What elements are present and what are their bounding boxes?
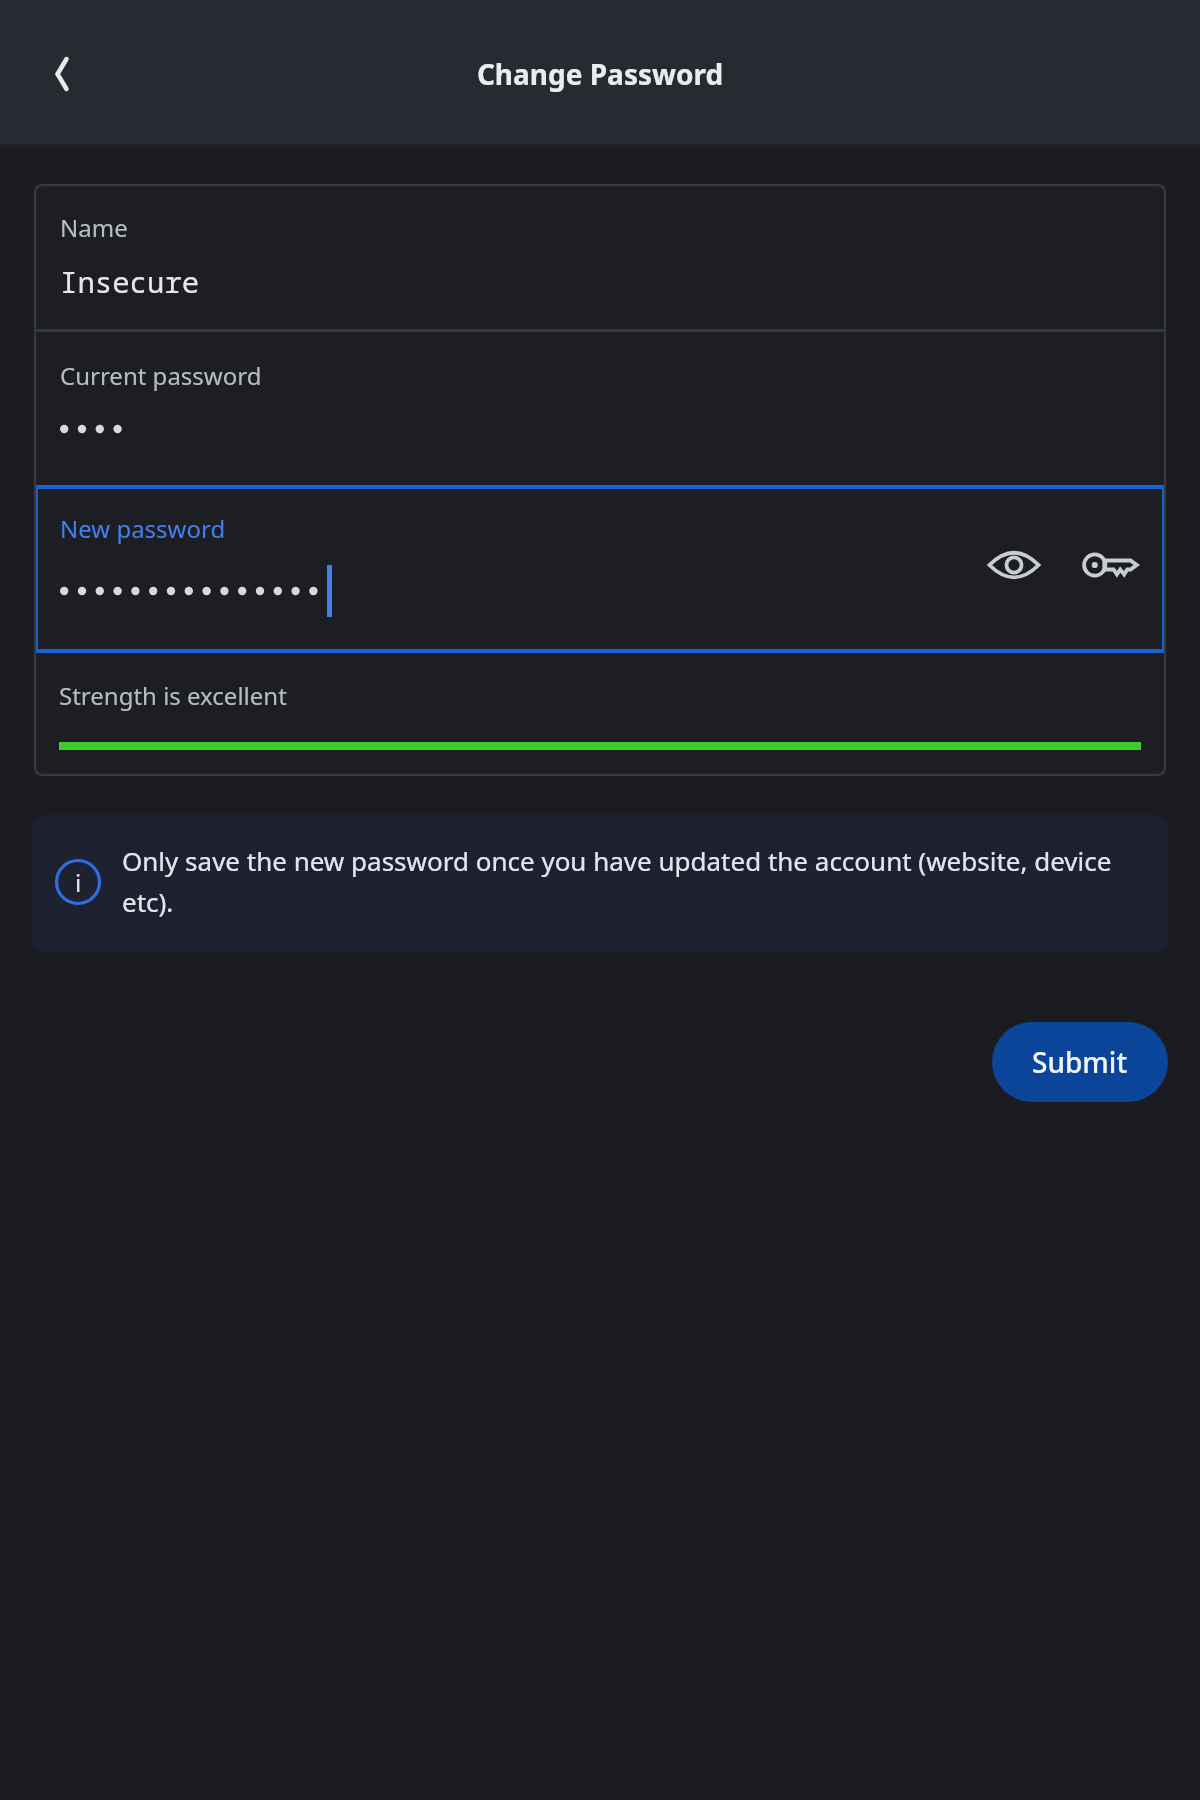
button[interactable]: Current password [34, 332, 1166, 485]
staticText: Change Password [0, 55, 1200, 93]
staticText: Current password [60, 359, 262, 392]
button[interactable]: New password [38, 489, 1162, 649]
button[interactable]: Generate password [1078, 532, 1144, 598]
button[interactable]: Name [34, 184, 1166, 329]
button[interactable]: i [32, 815, 1168, 952]
button[interactable]: Submit [992, 1022, 1168, 1102]
button[interactable]: Back [26, 38, 98, 110]
staticText: Insecure [60, 262, 200, 301]
staticText: Name [60, 211, 128, 244]
staticText: Submit [1032, 1043, 1128, 1081]
staticText: New password [60, 512, 226, 545]
staticText: i [75, 866, 82, 899]
button[interactable]: Show password [981, 532, 1047, 598]
staticText: Only save the new password once you have… [122, 843, 1138, 920]
staticText: Strength is excellent [59, 679, 287, 712]
